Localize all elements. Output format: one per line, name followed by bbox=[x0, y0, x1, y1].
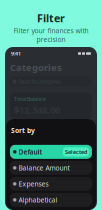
staticText: precision bbox=[36, 35, 65, 44]
button[interactable]: Default bbox=[10, 145, 92, 159]
staticText: Categories bbox=[10, 61, 62, 73]
staticText: Selected bbox=[65, 148, 87, 155]
staticText: Filter bbox=[37, 11, 65, 25]
staticText: Alphabetical bbox=[18, 195, 57, 204]
button[interactable]: Alphabetical bbox=[10, 193, 92, 207]
staticText: $12,348.00 bbox=[14, 104, 60, 116]
staticText: Default bbox=[18, 147, 42, 156]
staticText: Filter your finances with bbox=[13, 26, 88, 35]
staticText: Balance Amount bbox=[18, 163, 69, 172]
staticText: 9:41 bbox=[11, 50, 21, 57]
staticText: Total Balance bbox=[14, 95, 46, 103]
staticText: Expenses bbox=[18, 179, 48, 188]
staticText: Sort by bbox=[11, 126, 35, 135]
button[interactable]: Balance Amount bbox=[10, 161, 92, 175]
button[interactable]: Expenses bbox=[10, 177, 92, 191]
staticText: Search categories bbox=[18, 78, 62, 85]
